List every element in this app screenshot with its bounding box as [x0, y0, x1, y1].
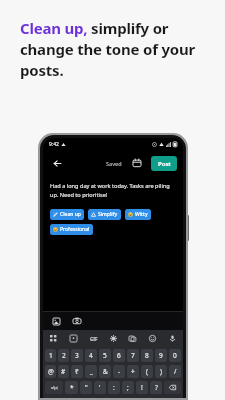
staticText: 0	[173, 351, 177, 360]
staticText: /	[174, 367, 177, 376]
button[interactable]: :	[108, 381, 120, 394]
button[interactable]: @	[45, 365, 56, 378]
staticText: Professional	[60, 226, 90, 233]
staticText: ₹	[75, 367, 79, 376]
button[interactable]: Add photo	[50, 315, 62, 327]
button[interactable]: 0	[169, 349, 181, 362]
button[interactable]: =\<	[45, 381, 63, 394]
button[interactable]: "	[80, 381, 92, 394]
staticText: 4	[89, 351, 93, 360]
staticText: 2	[62, 351, 66, 360]
staticText: GIF	[90, 336, 98, 342]
button[interactable]: 7	[127, 349, 139, 362]
button[interactable]: +	[127, 365, 139, 378]
button[interactable]: Settings	[107, 332, 120, 345]
button[interactable]: ?	[150, 381, 162, 394]
button[interactable]: -	[113, 365, 125, 378]
button[interactable]: '	[94, 381, 106, 394]
staticText: (	[146, 367, 148, 376]
staticText: 3	[75, 351, 79, 360]
button[interactable]: _	[85, 365, 97, 378]
button[interactable]: (	[141, 365, 153, 378]
button[interactable]: 5	[99, 349, 111, 362]
staticText: @	[48, 367, 54, 376]
button[interactable]: Professional	[50, 224, 93, 235]
button[interactable]: Apps	[47, 332, 60, 345]
button[interactable]: Camera	[71, 315, 83, 327]
staticText: Simplify	[98, 211, 118, 218]
button[interactable]: Backspace	[164, 381, 181, 394]
button[interactable]: )	[155, 365, 167, 378]
button[interactable]: !	[136, 381, 148, 394]
button[interactable]: Schedule	[130, 156, 144, 170]
button[interactable]: /	[169, 365, 181, 378]
button[interactable]: Witty	[125, 209, 151, 220]
button[interactable]: 6	[113, 349, 125, 362]
staticText: =\<	[51, 385, 58, 391]
button[interactable]: 4	[85, 349, 97, 362]
staticText: 5	[103, 351, 107, 360]
staticText: '	[99, 383, 101, 392]
staticText: )	[160, 367, 162, 376]
button[interactable]: Saved	[106, 160, 122, 167]
staticText: Witty	[135, 211, 148, 218]
button[interactable]: Voice input	[166, 332, 179, 345]
staticText: +	[131, 367, 135, 376]
button[interactable]: Emoji	[146, 332, 159, 345]
button[interactable]: ;	[122, 381, 134, 394]
button[interactable]: 3	[71, 349, 83, 362]
staticText: 1	[49, 351, 53, 360]
button[interactable]: 8	[141, 349, 153, 362]
staticText: -	[118, 367, 121, 376]
staticText: ;	[127, 383, 129, 392]
staticText: Post	[158, 160, 171, 168]
staticText: 8	[145, 351, 149, 360]
button[interactable]: Clipboard	[126, 332, 139, 345]
button[interactable]: 2	[58, 349, 69, 362]
staticText: *	[70, 383, 74, 392]
button[interactable]: 1	[45, 349, 56, 362]
button[interactable]: Simplify	[88, 209, 121, 220]
button[interactable]: *	[65, 381, 78, 394]
button[interactable]: #	[58, 365, 69, 378]
button[interactable]: ₹	[71, 365, 83, 378]
staticText: "	[85, 383, 88, 392]
staticText: Clean up, simplify or change the tone of…	[20, 18, 211, 81]
staticText: Clean up	[60, 211, 81, 218]
staticText: _	[90, 367, 93, 376]
staticText: 9	[159, 351, 163, 360]
button[interactable]: GIF	[87, 332, 100, 345]
staticText: #	[61, 367, 66, 376]
staticText: !	[141, 383, 143, 392]
staticText: :	[113, 383, 115, 392]
staticText: &	[103, 367, 108, 376]
button[interactable]: Post	[151, 156, 177, 171]
button[interactable]: 9	[155, 349, 167, 362]
staticText: 7	[131, 351, 135, 360]
button[interactable]: Back	[49, 155, 65, 171]
staticText: 6	[117, 351, 121, 360]
button[interactable]: Stickers	[67, 332, 80, 345]
staticText: Had a long day at work today. Tasks are …	[50, 182, 176, 199]
staticText: 9:42	[49, 141, 59, 148]
button[interactable]: Clean up	[50, 209, 84, 220]
button[interactable]: &	[99, 365, 111, 378]
staticText: ?	[155, 383, 158, 392]
